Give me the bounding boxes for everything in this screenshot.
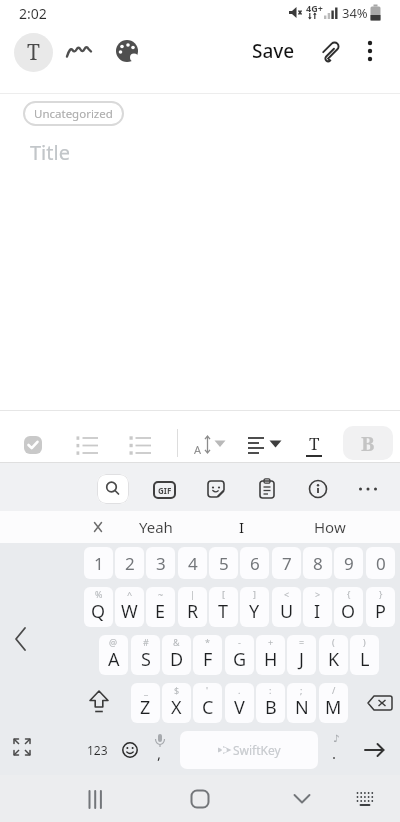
button[interactable]: ) [350,635,379,675]
button[interactable] [129,436,153,455]
staticText: M [325,695,342,720]
button[interactable]: : [256,683,285,723]
button[interactable]: $ [162,683,191,723]
button[interactable] [204,477,228,501]
button[interactable] [118,731,142,769]
staticText: < [284,588,290,600]
button[interactable] [76,436,100,455]
button[interactable]: 2 [115,547,144,579]
staticText: X [171,695,182,720]
button[interactable]: A [190,433,236,459]
button[interactable] [10,735,34,759]
staticText: U [280,599,294,624]
button[interactable] [364,683,398,723]
staticText: 2 [125,552,135,575]
button[interactable] [87,516,109,538]
button[interactable]: & [162,635,191,675]
button[interactable]: # [131,635,160,675]
staticText: E [155,599,166,624]
button[interactable] [291,789,313,809]
button[interactable]: 123 [84,731,111,769]
staticText: $ [174,684,180,696]
button[interactable]: SwiftKey [180,731,318,769]
staticText: : [269,684,272,696]
button[interactable]: . [225,683,254,723]
staticText: 7 [282,552,292,575]
button[interactable]: 5 [209,547,238,579]
staticText: - [238,636,241,648]
button[interactable]: @ [99,635,128,675]
button[interactable]: | [178,587,207,627]
staticText: ' [206,684,209,696]
button[interactable]: 7 [272,547,301,579]
button[interactable]: { [334,587,363,627]
button[interactable]: B [343,426,393,460]
button[interactable] [24,436,42,454]
button[interactable] [86,683,112,723]
staticText: A [194,442,202,457]
button[interactable]: 0 [366,547,395,579]
button[interactable]: I [220,511,264,543]
button[interactable]: T [14,33,53,72]
button[interactable]: + [256,635,285,675]
button[interactable]: ~ [146,587,175,627]
button[interactable] [85,788,107,810]
button[interactable]: * [193,635,222,675]
button[interactable]: _ [131,683,160,723]
button[interactable] [64,37,94,67]
button[interactable]: 8 [303,547,332,579]
button[interactable]: > [303,587,332,627]
button[interactable] [358,33,382,69]
button[interactable] [246,435,288,457]
button[interactable] [306,477,330,501]
button[interactable]: GIF [153,481,176,499]
button[interactable] [355,790,375,808]
button[interactable]: Yeah [128,511,184,543]
button[interactable]: < [272,587,301,627]
button[interactable] [97,474,129,504]
button[interactable]: [ [209,587,238,627]
button[interactable]: , [148,731,172,769]
staticText: { [347,588,351,600]
button[interactable]: ( [319,635,348,675]
staticText: } [379,588,383,600]
button[interactable]: T [302,431,326,459]
staticText: Title [30,139,70,166]
button[interactable]: 1 [84,547,113,579]
button[interactable] [317,36,345,64]
button[interactable]: ' [193,683,222,723]
button[interactable]: } [366,587,395,627]
button[interactable]: 4 [178,547,207,579]
staticText: Y [249,599,260,624]
button[interactable] [189,788,211,810]
button[interactable]: = [287,635,316,675]
staticText: ^ [127,588,133,600]
button[interactable]: 9 [334,547,363,579]
button[interactable]: 6 [240,547,269,579]
button[interactable]: How [305,511,355,543]
staticText: ~ [158,588,164,600]
button[interactable]: ; [287,683,316,723]
staticText: | [190,588,195,600]
button[interactable]: Uncategorized [23,101,124,126]
staticText: How [314,517,346,537]
button[interactable]: / [319,683,348,723]
button[interactable]: ^ [115,587,144,627]
staticText: . [238,684,241,696]
staticText: I [239,517,245,537]
button[interactable]: - [225,635,254,675]
button[interactable] [255,477,279,501]
staticText: 6 [250,552,260,575]
button[interactable] [112,37,142,67]
button[interactable] [358,733,392,767]
button[interactable] [9,625,33,653]
button[interactable]: % [84,587,113,627]
button[interactable] [356,477,380,501]
button[interactable]: ♪ [322,731,346,769]
staticText: 0 [376,552,386,575]
button[interactable]: Save [252,33,295,69]
button[interactable]: ] [240,587,269,627]
button[interactable]: 3 [146,547,175,579]
staticText: O [341,599,356,624]
staticText: 5 [219,552,229,575]
